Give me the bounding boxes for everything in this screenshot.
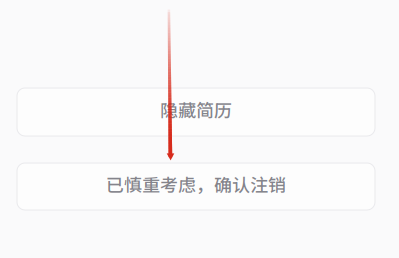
button[interactable]: 隐藏简历: [17, 88, 375, 136]
staticText: 已慎重考虑，确认注销: [106, 171, 286, 197]
staticText: 隐藏简历: [160, 96, 232, 123]
button[interactable]: 已慎重考虑，确认注销: [17, 163, 375, 210]
